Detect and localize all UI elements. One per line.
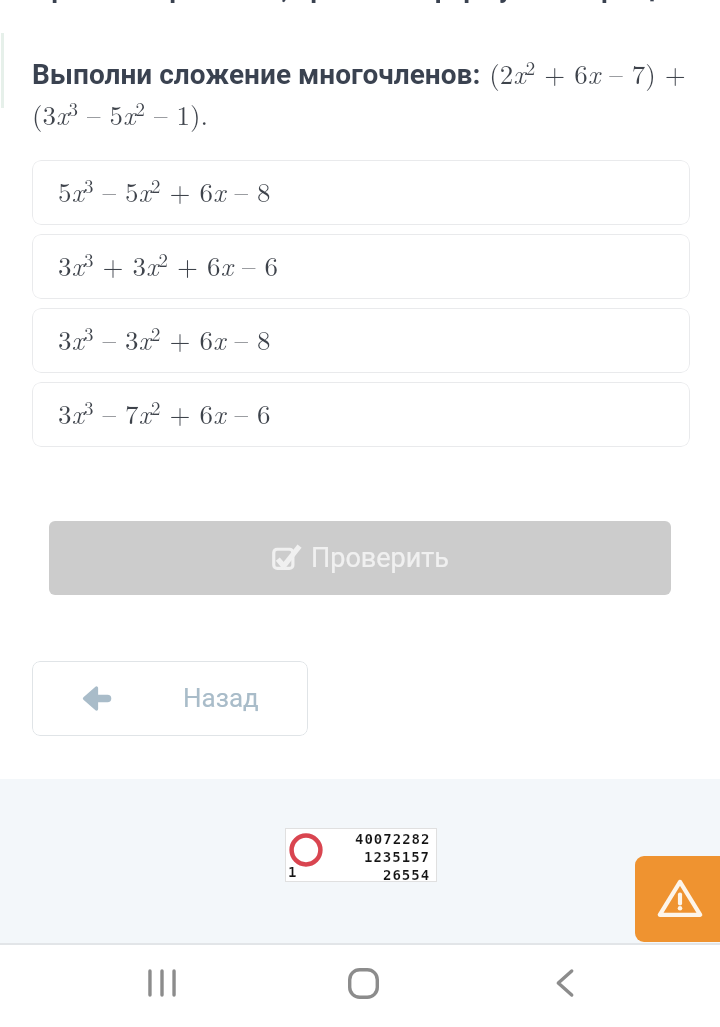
staticText: Проверить — [311, 542, 449, 574]
button[interactable]: Home — [321, 944, 399, 1022]
staticText: 1 — [288, 864, 298, 880]
staticText: 3x3 – 7x2 + 6x – 6 — [58, 394, 271, 432]
button[interactable]: 3x3 – 3x2 + 6x – 8 — [32, 308, 690, 373]
staticText: 1235157 — [364, 849, 431, 865]
staticText: Выполни сложение многочленов: (2x2 + 6x … — [32, 54, 694, 133]
button[interactable]: Back — [521, 944, 599, 1022]
button[interactable]: Проверить — [49, 521, 671, 595]
button[interactable]: 3x3 – 7x2 + 6x – 6 — [32, 382, 690, 447]
button[interactable]: Recent apps — [122, 944, 200, 1022]
staticText: 5x3 – 5x2 + 6x – 8 — [58, 172, 271, 210]
button[interactable]: 3x3 + 3x2 + 6x – 6 — [32, 234, 690, 299]
staticText: 26554 — [383, 867, 431, 883]
staticText: 40072282 — [355, 831, 431, 847]
button[interactable]: 5x3 – 5x2 + 6x – 8 — [32, 160, 690, 225]
staticText: 3x3 + 3x2 + 6x – 6 — [58, 246, 279, 284]
button[interactable]: 40072282 — [285, 828, 437, 882]
button[interactable]: Назад — [32, 661, 308, 736]
staticText: Упрости выражение, применяя формулы сокр… — [20, 0, 655, 4]
staticText: Назад — [183, 683, 259, 713]
staticText: 3x3 – 3x2 + 6x – 8 — [58, 320, 271, 358]
button[interactable]: Report ad — [635, 856, 720, 942]
